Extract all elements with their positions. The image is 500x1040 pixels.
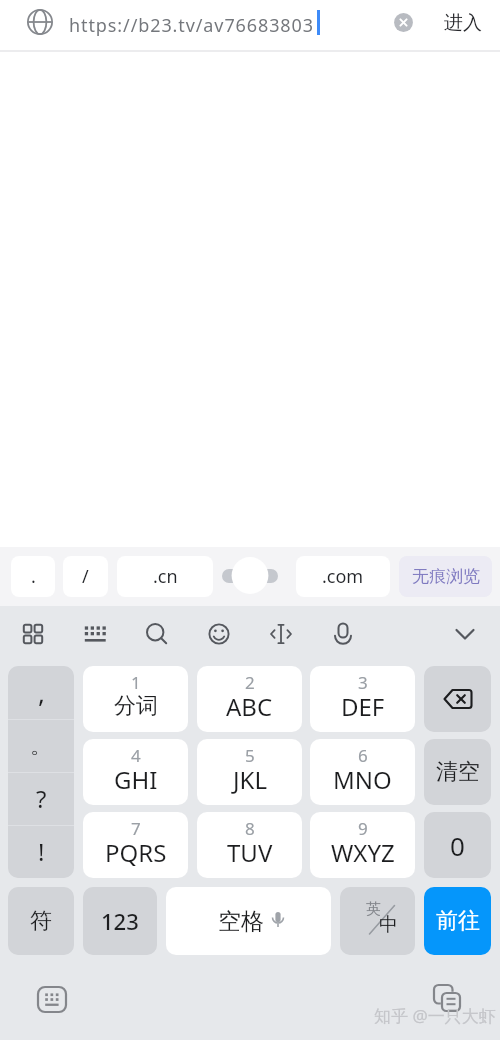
- staticText: 6: [358, 744, 368, 767]
- button[interactable]: [11, 612, 55, 656]
- staticText: 分词: [114, 692, 158, 720]
- staticText: MNO: [333, 763, 392, 796]
- staticText: https://b23.tv/av76683803: [69, 13, 314, 38]
- staticText: PQRS: [105, 836, 167, 869]
- button[interactable]: 4: [83, 739, 188, 805]
- staticText: .com: [322, 564, 364, 589]
- button[interactable]: ,: [8, 666, 74, 719]
- button[interactable]: 7: [83, 812, 188, 878]
- staticText: 无痕浏览: [412, 566, 480, 587]
- button[interactable]: .: [11, 556, 55, 597]
- staticText: 英: [366, 900, 381, 919]
- staticText: 5: [245, 744, 255, 767]
- staticText: 2: [245, 671, 255, 694]
- button[interactable]: 2: [197, 666, 302, 732]
- button[interactable]: [390, 9, 416, 35]
- staticText: !: [38, 835, 45, 868]
- button[interactable]: 8: [197, 812, 302, 878]
- staticText: 3: [358, 671, 368, 694]
- staticText: 符: [30, 907, 52, 935]
- staticText: 空格: [218, 907, 264, 936]
- button[interactable]: !: [8, 825, 74, 878]
- staticText: ABC: [226, 690, 273, 723]
- staticText: 9: [358, 817, 368, 840]
- staticText: 中: [379, 913, 398, 937]
- staticText: TUV: [227, 836, 273, 869]
- button[interactable]: [197, 612, 241, 656]
- button[interactable]: 前往: [424, 887, 491, 955]
- button[interactable]: 3: [310, 666, 415, 732]
- staticText: 知乎 @一只大虾: [374, 1004, 496, 1027]
- button[interactable]: 0: [424, 812, 491, 878]
- staticText: DEF: [341, 690, 385, 723]
- button[interactable]: ?: [8, 772, 74, 825]
- button[interactable]: 6: [310, 739, 415, 805]
- staticText: ?: [36, 782, 47, 815]
- staticText: .: [31, 564, 36, 589]
- button[interactable]: 9: [310, 812, 415, 878]
- button[interactable]: 无痕浏览: [399, 556, 492, 597]
- button[interactable]: 进入: [440, 0, 486, 45]
- staticText: 0: [450, 828, 465, 863]
- staticText: .cn: [153, 564, 178, 589]
- button[interactable]: 1: [83, 666, 188, 732]
- button[interactable]: 英: [340, 887, 415, 955]
- button[interactable]: [443, 612, 487, 656]
- staticText: 123: [101, 906, 139, 936]
- button[interactable]: .com: [296, 556, 390, 597]
- staticText: 进入: [444, 11, 482, 35]
- button[interactable]: 。: [8, 719, 74, 772]
- staticText: 1: [131, 671, 141, 694]
- staticText: 清空: [436, 758, 480, 786]
- button[interactable]: /: [63, 556, 108, 597]
- button[interactable]: [73, 612, 117, 656]
- staticText: GHI: [114, 763, 158, 796]
- button[interactable]: 5: [197, 739, 302, 805]
- staticText: 7: [131, 817, 141, 840]
- button[interactable]: [321, 612, 365, 656]
- staticText: JKL: [233, 763, 267, 796]
- button[interactable]: [135, 612, 179, 656]
- button[interactable]: [425, 977, 469, 1021]
- staticText: ,: [38, 675, 45, 710]
- button[interactable]: .cn: [117, 556, 213, 597]
- button[interactable]: 123: [83, 887, 157, 955]
- staticText: 前往: [436, 907, 480, 935]
- button[interactable]: [30, 977, 74, 1021]
- button[interactable]: ,: [8, 666, 74, 878]
- button[interactable]: [259, 612, 303, 656]
- button[interactable]: 符: [8, 887, 74, 955]
- staticText: WXYZ: [331, 836, 395, 869]
- staticText: /: [82, 564, 89, 589]
- button[interactable]: 空格: [166, 887, 331, 955]
- staticText: 4: [131, 744, 141, 767]
- staticText: 。: [30, 732, 52, 760]
- staticText: 8: [245, 817, 255, 840]
- button[interactable]: 清空: [424, 739, 491, 805]
- button[interactable]: [424, 666, 491, 732]
